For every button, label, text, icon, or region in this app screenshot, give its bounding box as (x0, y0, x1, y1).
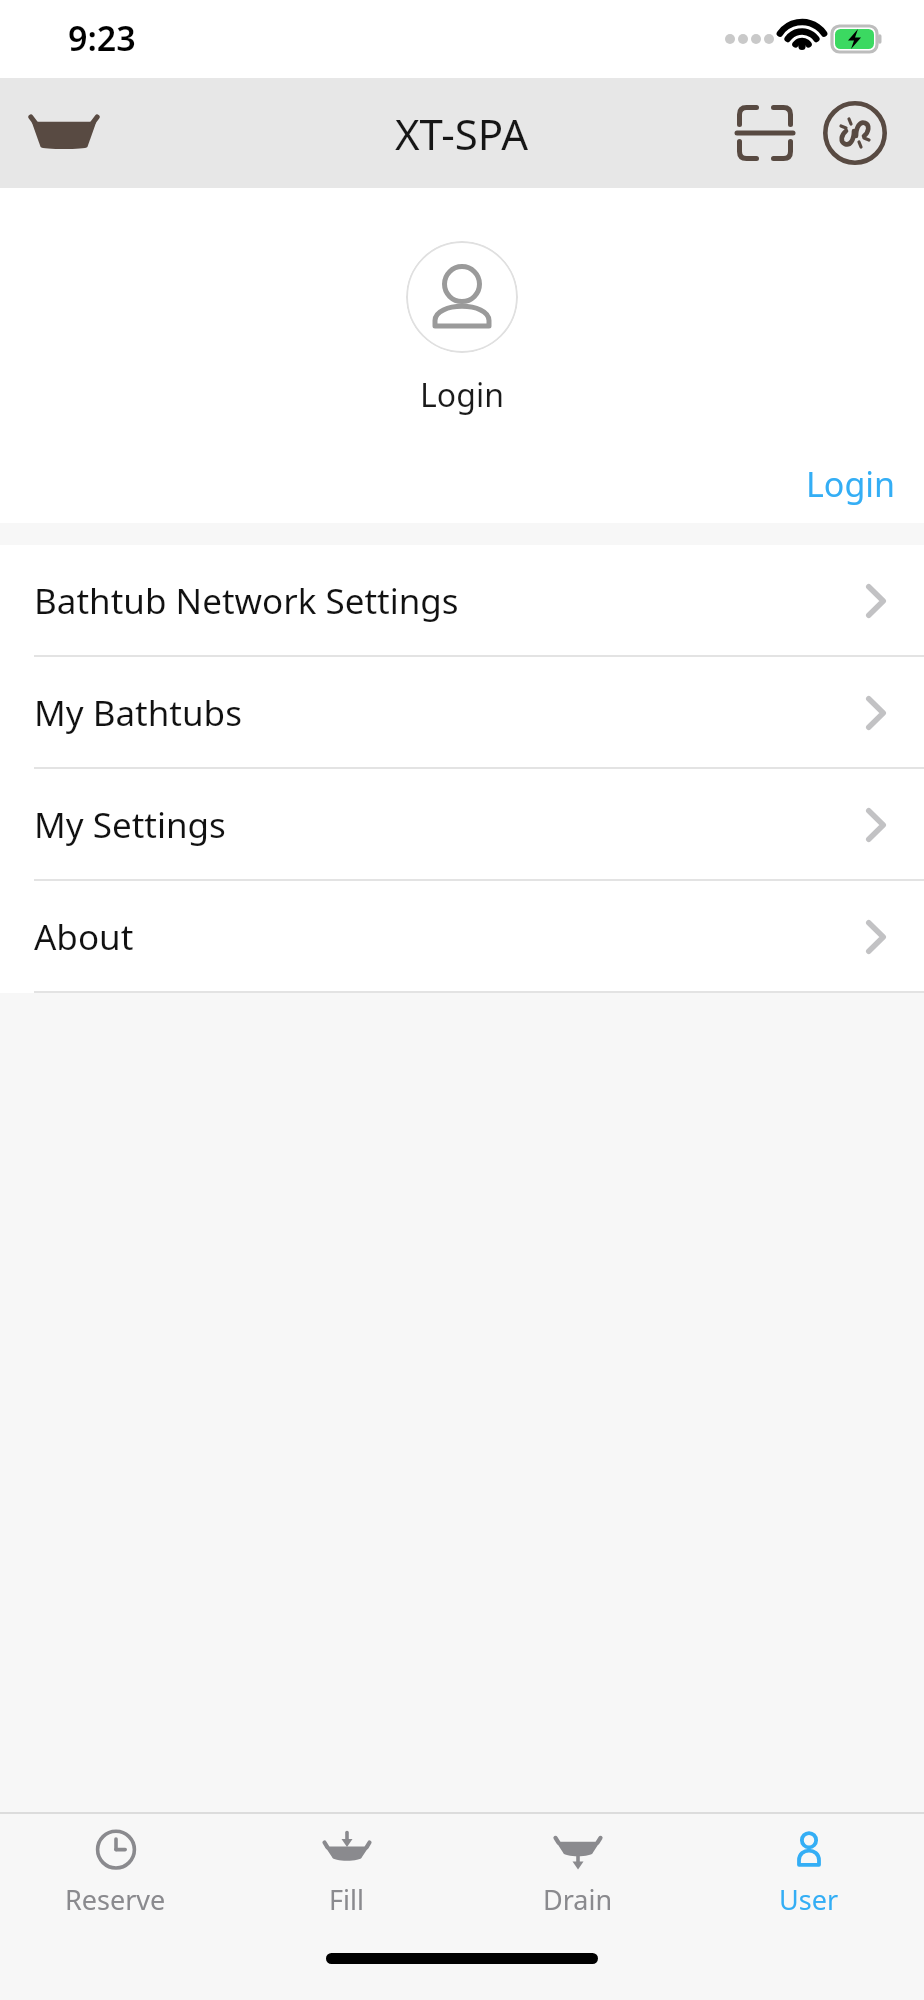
button[interactable]: Scan (722, 90, 808, 176)
staticText: Fill (329, 1881, 364, 1918)
button[interactable]: Drain (462, 1814, 693, 1932)
staticText: Bathtub Network Settings (34, 577, 459, 625)
button[interactable]: User (693, 1814, 924, 1932)
staticText: Drain (543, 1881, 613, 1918)
staticText: About (34, 913, 134, 961)
button[interactable]: About (0, 881, 924, 993)
staticText: Reserve (65, 1881, 166, 1918)
staticText: My Bathtubs (34, 689, 242, 737)
staticText: 9:23 (68, 15, 136, 61)
staticText: My Settings (34, 801, 226, 849)
button[interactable]: My Bathtubs (0, 657, 924, 769)
staticText: User (779, 1881, 839, 1918)
staticText: XT-SPA (395, 105, 529, 162)
button[interactable]: Bathtub Network Settings (0, 545, 924, 657)
button[interactable]: Bathtub (16, 101, 112, 165)
button[interactable]: Reserve (0, 1814, 231, 1932)
staticText: Login (806, 461, 896, 507)
button[interactable]: Disconnected (812, 90, 898, 176)
staticText: Login (0, 373, 924, 417)
button[interactable]: My Settings (0, 769, 924, 881)
button[interactable]: Avatar (406, 241, 518, 353)
button[interactable]: Login (796, 453, 906, 515)
button[interactable]: Fill (231, 1814, 462, 1932)
